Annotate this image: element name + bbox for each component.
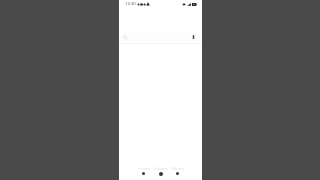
staticText: Library (171, 166, 185, 171)
button[interactable]: Home (135, 161, 152, 177)
staticText: Explore (153, 166, 168, 171)
staticText: 12:30 (125, 1, 136, 7)
staticText: Home (138, 166, 150, 171)
button[interactable]: Explore (152, 161, 169, 177)
button[interactable]: Search (121, 33, 200, 41)
other: Account (191, 35, 196, 40)
button[interactable]: Library (169, 161, 186, 177)
other: Search (123, 35, 128, 40)
